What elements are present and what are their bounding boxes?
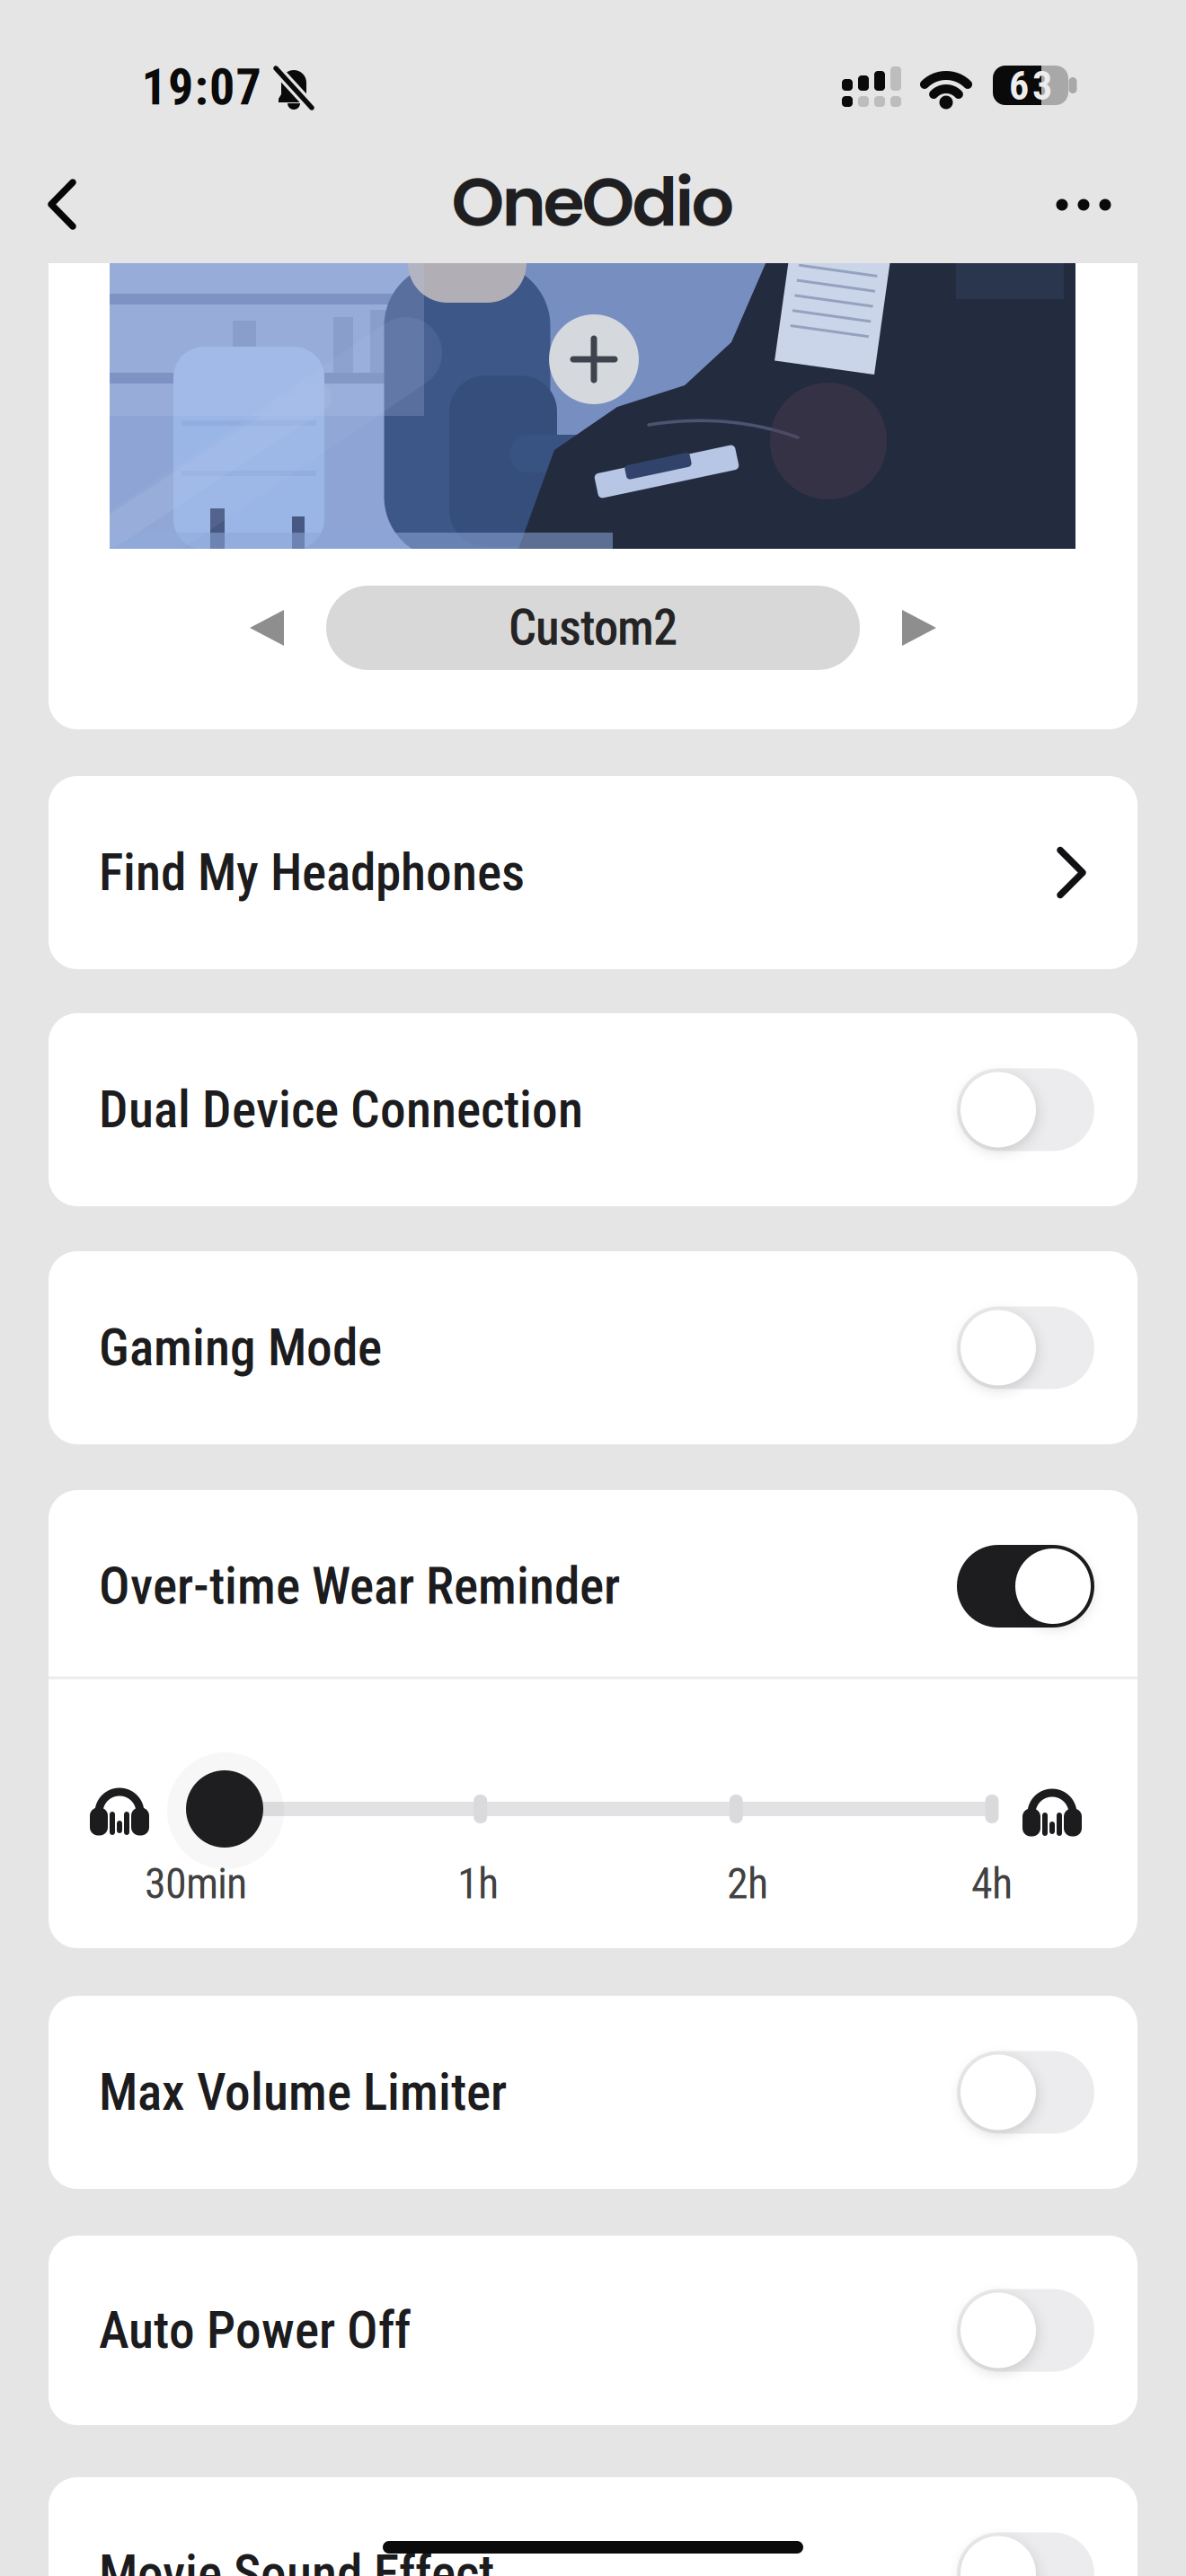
button[interactable]: Auto Power Off	[957, 2289, 1094, 2372]
staticText: OneOdio	[451, 155, 735, 249]
staticText: 4h	[971, 1858, 1013, 1909]
staticText: 2h	[727, 1858, 768, 1909]
staticText: 63	[1009, 63, 1052, 109]
button[interactable]: Next preset	[901, 608, 937, 648]
staticText: Dual Device Connection	[99, 1080, 583, 1140]
staticText: Auto Power Off	[99, 2300, 411, 2361]
staticText: Over-time Wear Reminder	[99, 1556, 620, 1616]
staticText: Find My Headphones	[99, 842, 525, 903]
button[interactable]: Previous preset	[249, 608, 285, 648]
button[interactable]: Max Volume Limiter	[957, 2051, 1094, 2134]
button[interactable]: Gaming Mode	[957, 1306, 1094, 1389]
staticText: 30min	[145, 1858, 247, 1909]
staticText: Movie Sound Effect	[99, 2544, 494, 2576]
staticText: Max Volume Limiter	[99, 2062, 507, 2123]
staticText: 1h	[457, 1858, 499, 1909]
staticText: Gaming Mode	[99, 1318, 382, 1378]
staticText: Custom2	[509, 599, 677, 657]
button[interactable]: More options	[1056, 199, 1111, 211]
staticText: 19:07	[142, 58, 261, 117]
button[interactable]: Add preset	[549, 314, 639, 404]
button[interactable]: Movie Sound Effect	[957, 2532, 1094, 2576]
button[interactable]: Dual Device Connection	[957, 1068, 1094, 1151]
button[interactable]: Back	[51, 182, 76, 226]
button[interactable]: Find My Headphones	[49, 776, 1137, 969]
button[interactable]: Custom2	[326, 586, 860, 670]
button[interactable]: Over-time Wear Reminder	[957, 1545, 1094, 1628]
